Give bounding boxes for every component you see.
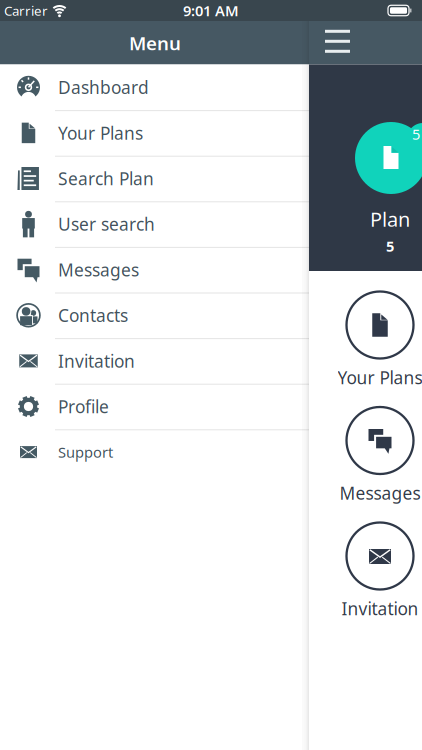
- button[interactable]: Messages: [0, 247, 309, 292]
- staticText: Invitation: [58, 349, 135, 372]
- staticText: Messages: [58, 258, 139, 281]
- staticText: Support: [58, 442, 113, 462]
- button[interactable]: Profile: [0, 384, 309, 429]
- staticText: Plan: [370, 206, 410, 232]
- button[interactable]: Dashboard: [0, 64, 309, 110]
- button[interactable]: Menu: [312, 19, 362, 63]
- staticText: Contacts: [58, 304, 128, 327]
- staticText: Dashboard: [58, 76, 149, 99]
- staticText: User search: [58, 213, 155, 236]
- staticText: 5: [412, 124, 420, 144]
- staticText: Menu: [129, 31, 181, 55]
- button[interactable]: Support: [0, 429, 309, 475]
- staticText: 9:01 AM: [183, 1, 239, 20]
- staticText: Invitation: [341, 597, 418, 620]
- button[interactable]: Search Plan: [0, 156, 309, 201]
- staticText: Search Plan: [58, 167, 154, 190]
- staticText: 5: [386, 236, 394, 256]
- staticText: Carrier: [4, 2, 48, 19]
- staticText: Your Plans: [337, 366, 422, 389]
- button[interactable]: Invitation: [0, 338, 309, 384]
- button[interactable]: Contacts: [0, 292, 309, 338]
- button[interactable]: Your Plans: [338, 291, 422, 387]
- button[interactable]: 5: [355, 122, 422, 253]
- staticText: Your Plans: [58, 121, 143, 144]
- button[interactable]: Your Plans: [0, 110, 309, 156]
- staticText: Profile: [58, 395, 109, 418]
- button[interactable]: Messages: [338, 406, 422, 502]
- button[interactable]: Invitation: [338, 522, 422, 618]
- button[interactable]: User search: [0, 201, 309, 247]
- staticText: Messages: [339, 481, 420, 504]
